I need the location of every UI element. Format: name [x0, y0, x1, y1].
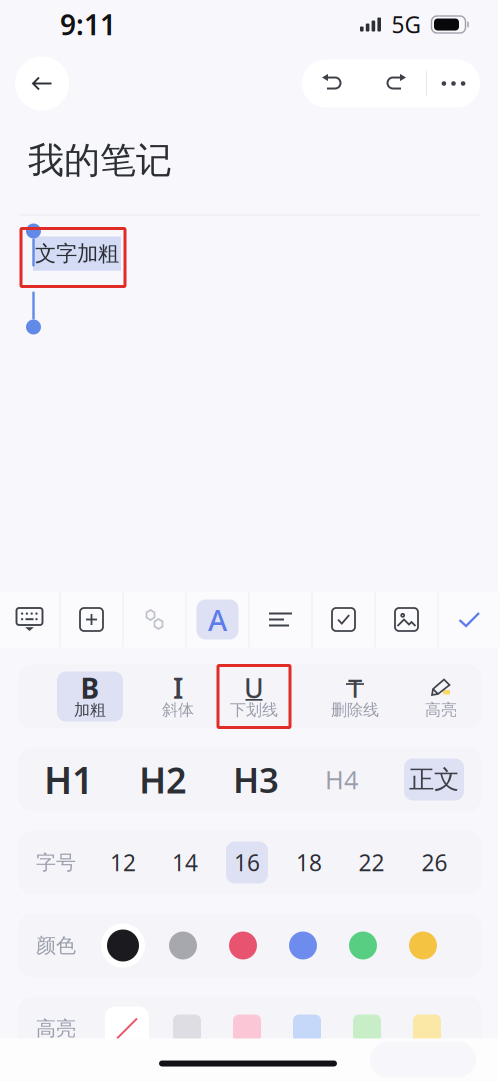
button[interactable]: Back — [15, 56, 69, 110]
button[interactable]: Redo — [364, 59, 426, 107]
button[interactable]: H1 — [44, 755, 93, 804]
staticText: 我的笔记 — [28, 138, 172, 183]
button[interactable]: 18 — [278, 840, 340, 884]
staticText: 18 — [296, 847, 322, 877]
button[interactable]: 14 — [154, 840, 216, 884]
button[interactable]: T — [319, 671, 391, 721]
staticText: 正文 — [409, 764, 459, 795]
button[interactable]: Done — [438, 591, 500, 647]
button[interactable]: Image — [375, 591, 437, 647]
staticText: 12 — [110, 847, 136, 877]
staticText: 颜色 — [36, 933, 76, 958]
staticText: 加粗 — [74, 700, 106, 720]
staticText: 5G — [391, 9, 421, 39]
button[interactable]: I — [145, 671, 211, 721]
staticText: B — [80, 669, 99, 707]
staticText: H4 — [325, 763, 358, 796]
button[interactable]: 16 — [216, 840, 278, 884]
staticText: 字号 — [36, 850, 76, 875]
button[interactable]: Blue highlight — [277, 1006, 337, 1050]
staticText: 16 — [234, 847, 260, 877]
button[interactable]: Checklist — [312, 591, 374, 647]
button[interactable]: Blue — [273, 923, 333, 967]
button[interactable]: No highlight — [97, 1006, 157, 1050]
button[interactable]: Insert — [60, 591, 122, 647]
button[interactable]: More — [427, 59, 480, 107]
button[interactable]: 12 — [92, 840, 154, 884]
button[interactable]: Yellow — [393, 923, 453, 967]
button[interactable]: Keyboard — [0, 591, 59, 647]
button[interactable]: B — [57, 671, 123, 721]
button[interactable]: Align — [249, 591, 311, 647]
staticText: U — [244, 670, 264, 706]
staticText: 高亮 — [36, 1016, 76, 1041]
button[interactable]: Gray — [153, 923, 213, 967]
staticText: 斜体 — [162, 700, 194, 720]
button[interactable]: 22 — [340, 840, 403, 884]
button[interactable]: 正文 — [404, 758, 464, 800]
staticText: H3 — [233, 756, 279, 802]
staticText: H1 — [44, 755, 93, 804]
button[interactable]: Black — [93, 923, 153, 967]
button[interactable]: 26 — [403, 840, 466, 884]
staticText: 文字加粗 — [35, 240, 119, 267]
staticText: T — [348, 671, 362, 705]
staticText: 22 — [358, 847, 384, 877]
staticText: H2 — [139, 756, 187, 803]
staticText: 14 — [172, 847, 198, 877]
button[interactable]: H4 — [325, 763, 358, 796]
button[interactable]: Green highlight — [337, 1006, 397, 1050]
button[interactable]: Text format — [186, 591, 248, 647]
staticText: 9:11 — [60, 6, 116, 43]
staticText: 下划线 — [230, 700, 278, 720]
button[interactable]: Yellow highlight — [397, 1006, 457, 1050]
button[interactable]: Pink highlight — [217, 1006, 277, 1050]
button[interactable]: Red — [213, 923, 273, 967]
button[interactable]: U — [218, 671, 290, 721]
staticText: I — [173, 669, 183, 707]
button[interactable]: Gray highlight — [157, 1006, 217, 1050]
button[interactable]: H3 — [233, 756, 279, 802]
staticText: 26 — [421, 847, 447, 877]
button[interactable]: Green — [333, 923, 393, 967]
button[interactable]: 高亮 — [408, 671, 474, 721]
button[interactable]: Link — [123, 591, 185, 647]
staticText: A — [208, 600, 227, 639]
button[interactable]: Undo — [302, 59, 364, 107]
button[interactable]: H2 — [139, 756, 187, 803]
staticText: 删除线 — [331, 700, 379, 720]
staticText: 高亮 — [425, 700, 457, 720]
